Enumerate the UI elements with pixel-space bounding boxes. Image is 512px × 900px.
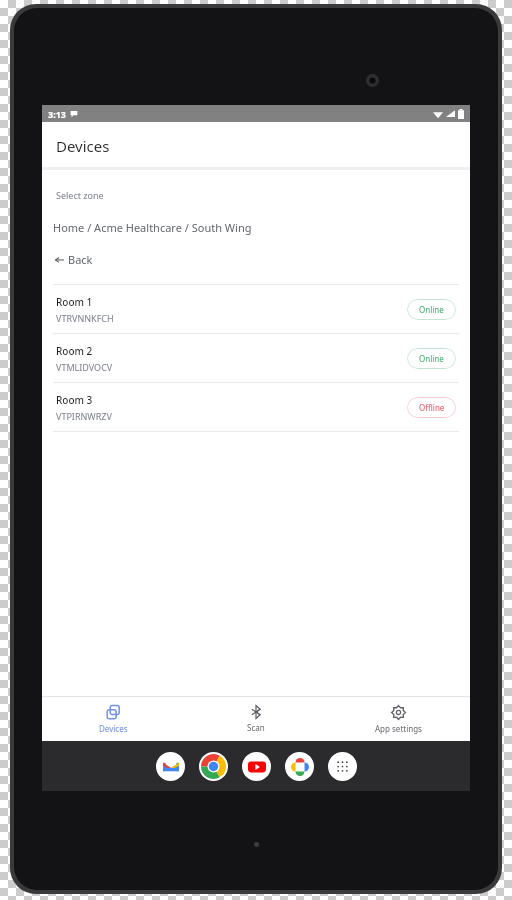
button[interactable]: Online xyxy=(407,299,456,320)
staticText: Online xyxy=(419,353,444,364)
button[interactable]: Photos xyxy=(285,752,314,781)
button[interactable]: Devices xyxy=(42,701,184,738)
button[interactable]: Gmail xyxy=(156,752,185,781)
button[interactable]: Room 1 xyxy=(42,285,470,333)
staticText: VTPIRNWRZV xyxy=(56,410,112,422)
other: App settings xyxy=(391,705,406,720)
staticText: Scan xyxy=(247,722,265,733)
staticText: Room 2 xyxy=(56,344,93,358)
button[interactable]: App settings xyxy=(327,701,470,738)
staticText: Select zone xyxy=(56,189,104,201)
button[interactable]: Chrome xyxy=(199,752,228,781)
staticText: Online xyxy=(419,304,444,315)
button[interactable]: Online xyxy=(407,348,456,369)
staticText: 3:13 xyxy=(48,108,66,120)
staticText: Room 1 xyxy=(56,295,93,309)
staticText: Room 3 xyxy=(56,393,93,407)
staticText: Devices xyxy=(56,136,110,156)
staticText: VTRVNNKFCH xyxy=(56,312,114,324)
button[interactable]: YouTube xyxy=(242,752,271,781)
staticText: Back xyxy=(68,252,93,267)
button[interactable]: Room 2 xyxy=(42,334,470,382)
staticText: Offline xyxy=(419,402,445,413)
other: Scan xyxy=(249,705,263,719)
button[interactable]: All apps xyxy=(328,752,357,781)
button[interactable]: Offline xyxy=(407,397,456,418)
staticText: Devices xyxy=(99,723,128,734)
button[interactable]: Scan xyxy=(184,701,327,737)
staticText: Home / Acme Healthcare / South Wing xyxy=(53,220,252,235)
staticText: VTMLIDVOCV xyxy=(56,361,113,373)
button[interactable]: Room 3 xyxy=(42,383,470,431)
staticText: App settings xyxy=(375,723,422,734)
other: Devices xyxy=(106,705,121,720)
button[interactable]: Back xyxy=(53,250,95,269)
